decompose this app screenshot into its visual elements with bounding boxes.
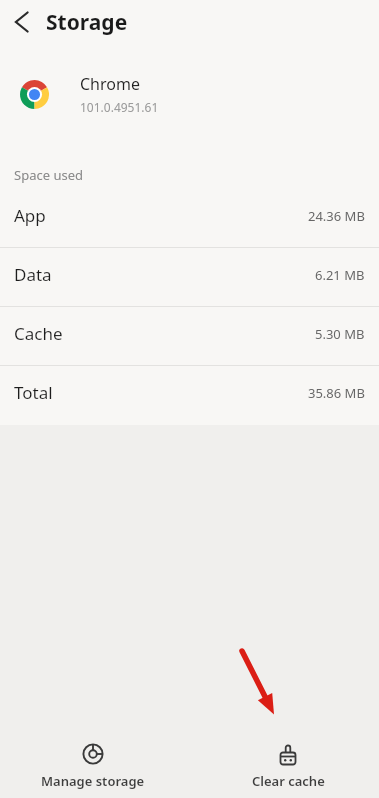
staticText: Total xyxy=(14,381,53,404)
staticText: 24.36 MB xyxy=(308,207,365,225)
staticText: 101.0.4951.61 xyxy=(80,99,159,115)
button[interactable]: App xyxy=(0,189,379,248)
button[interactable]: Cache xyxy=(0,307,379,366)
staticText: App xyxy=(14,204,46,227)
staticText: Space used xyxy=(14,166,83,184)
button[interactable]: Total xyxy=(0,366,379,425)
staticText: Clear cache xyxy=(252,772,325,790)
staticText: Manage storage xyxy=(41,772,145,790)
staticText: 35.86 MB xyxy=(308,384,365,402)
button[interactable]: Clear cache xyxy=(193,743,379,790)
button[interactable]: Data xyxy=(0,248,379,307)
staticText: Data xyxy=(14,263,52,286)
staticText: 5.30 MB xyxy=(315,325,365,343)
staticText: 6.21 MB xyxy=(315,266,365,284)
staticText: Cache xyxy=(14,322,63,345)
staticText: Chrome xyxy=(80,73,140,95)
button[interactable] xyxy=(0,0,44,47)
button[interactable]: Manage storage xyxy=(0,743,187,790)
staticText: Storage xyxy=(46,8,128,37)
